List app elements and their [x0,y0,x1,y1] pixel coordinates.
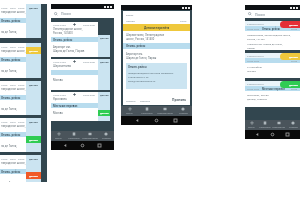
staticText: СЛМ [10,83,16,86]
button[interactable]: Авиакомпании [156,106,174,116]
button[interactable]: 10:05 [0,118,47,152]
staticText: 10:05 СЛМ [247,59,260,62]
staticText: Поиск [61,11,72,16]
button[interactable]: 9 августа 2019 [245,53,300,78]
button[interactable]: Recents [285,132,290,137]
button[interactable]: Recents [173,118,178,123]
button[interactable]: Детали [280,21,300,28]
button[interactable]: Авиакомпании [82,131,98,141]
button[interactable]: 10:05 [0,155,47,182]
button[interactable]: Авиакомпании [272,120,286,130]
button[interactable]: Справка [174,106,192,116]
staticText: Аэропорты [259,126,271,129]
button[interactable]: Home [80,143,85,148]
staticText: ниградское шоссе, [1,124,26,128]
staticText: Местные перевоз [262,87,285,90]
staticText: Россия, 141400 [53,31,73,35]
staticText: 10:05 [1,83,8,86]
staticText: Справка [179,112,188,115]
button[interactable]: Детали перелёта [123,24,190,31]
staticText: Справка [289,126,298,129]
button[interactable]: Home [154,118,159,123]
button[interactable]: Recents [97,143,102,148]
button[interactable]: Принять [172,98,187,102]
button[interactable]: 10:05 СЛМ [51,92,114,121]
staticText: 23:55 ВНК [83,23,96,26]
staticText: СЛМ [10,45,16,48]
staticText: 23:55 [18,120,25,123]
button[interactable]: Поиск [248,10,300,18]
staticText: Рейсы [126,112,133,115]
staticText: Детали перелёта [144,26,170,30]
button[interactable]: Детали [26,47,41,54]
staticText: Вылет [126,13,134,16]
button[interactable]: Детали [26,172,41,179]
button[interactable]: Аэропорты [258,120,272,130]
staticText: ля де Голля, Париж [1,144,26,148]
button[interactable]: Аэропорты [66,131,82,141]
button[interactable]: Отмена [126,99,136,102]
button[interactable]: Back [135,118,140,123]
button[interactable]: 10:05 СЛМ [51,22,114,57]
staticText: Москва [53,111,63,115]
staticText: Детали [29,138,38,141]
staticText: Детали [29,174,38,177]
staticText: ниградское шоссе, [1,10,26,14]
staticText: 23:55 [18,83,25,86]
button[interactable]: Детали [280,53,300,60]
staticText: Детали [29,157,38,160]
staticText: Отмен. рейсы [128,65,147,69]
staticText: 23:55 [291,59,298,62]
staticText: Аэропорты [68,137,80,140]
staticText: Ленинградское шоссе, [53,27,83,31]
staticText: Париж [247,46,255,49]
button[interactable]: Рейсы [245,120,258,130]
staticText: Шарля де Голля, Париж [53,49,85,53]
staticText: Детали [29,120,38,123]
staticText: Аэропорт им. [126,52,143,56]
button[interactable]: Справка [98,131,114,141]
staticText: ниградское шоссе, [1,49,26,53]
staticText: ниградское шоссе, [1,87,26,91]
staticText: Авиакомпании [157,112,173,115]
button[interactable]: 10:05 [0,81,47,115]
staticText: Авиакомпании [272,126,286,129]
staticText: 10:05 СЛМ [53,23,66,26]
button[interactable]: Home [270,132,275,137]
staticText: Авиакомпании [82,137,98,140]
button[interactable]: Детали [98,110,110,116]
staticText: Аэропорт им. Шарля де Голля, [247,42,283,45]
staticText: Детали [100,94,109,97]
button[interactable]: Back [63,143,68,148]
staticText: ля де Голля, Париж [1,30,26,34]
button[interactable]: Аэропорты [138,106,156,116]
staticText: Детали [289,23,298,26]
button[interactable]: 10:05 СЛМ [51,59,114,90]
staticText: Местные перевоз [53,104,78,108]
staticText: 10:05 [1,120,8,123]
staticText: Москва [53,78,63,82]
button[interactable]: Справка [286,120,300,130]
staticText: Москва [247,69,256,72]
staticText: 23:55 [180,19,187,22]
staticText: Поиск [255,12,266,17]
staticText: Отмен. рейсы [1,58,21,62]
staticText: Детали [289,55,298,58]
button[interactable]: 10:05 [0,4,47,38]
staticText: Донецк, Украина [247,97,267,100]
button[interactable]: Закрыть [140,99,151,102]
button[interactable]: Поиск [54,9,114,18]
button[interactable]: Детали [280,81,300,88]
staticText: Международный Минское Шереметь [128,71,174,74]
button[interactable]: 10:05 [0,43,47,78]
button[interactable]: 9 августа 2019 [245,21,300,50]
button[interactable]: Рейсы [51,131,66,141]
button[interactable]: Рейсы [121,106,138,116]
staticText: Отмен. рейсы [262,27,280,30]
staticText: Шереметьево, Ленинградское шоссе, [247,33,291,36]
button[interactable]: 9 августа 2019 [245,81,300,107]
button[interactable]: Детали [26,136,41,143]
button[interactable]: Back [255,132,260,137]
staticText: Столичный РГ за [128,75,149,78]
staticText: 23:55 [18,45,25,48]
